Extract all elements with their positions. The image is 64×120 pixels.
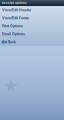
staticText: Print Options [2, 24, 23, 28]
button[interactable]: Back [0, 38, 64, 46]
staticText: Back [8, 40, 16, 44]
button[interactable]: View/Edit Footer [0, 14, 64, 22]
staticText: View/Edit Header [2, 8, 31, 12]
button[interactable]: View/Edit Header [0, 6, 64, 14]
staticText: Receipt Options [2, 1, 26, 5]
staticText: View/Edit Footer [2, 16, 29, 20]
button[interactable]: Email Options [0, 30, 64, 38]
staticText: Email Options [2, 32, 25, 36]
button[interactable]: Print Options [0, 22, 64, 30]
